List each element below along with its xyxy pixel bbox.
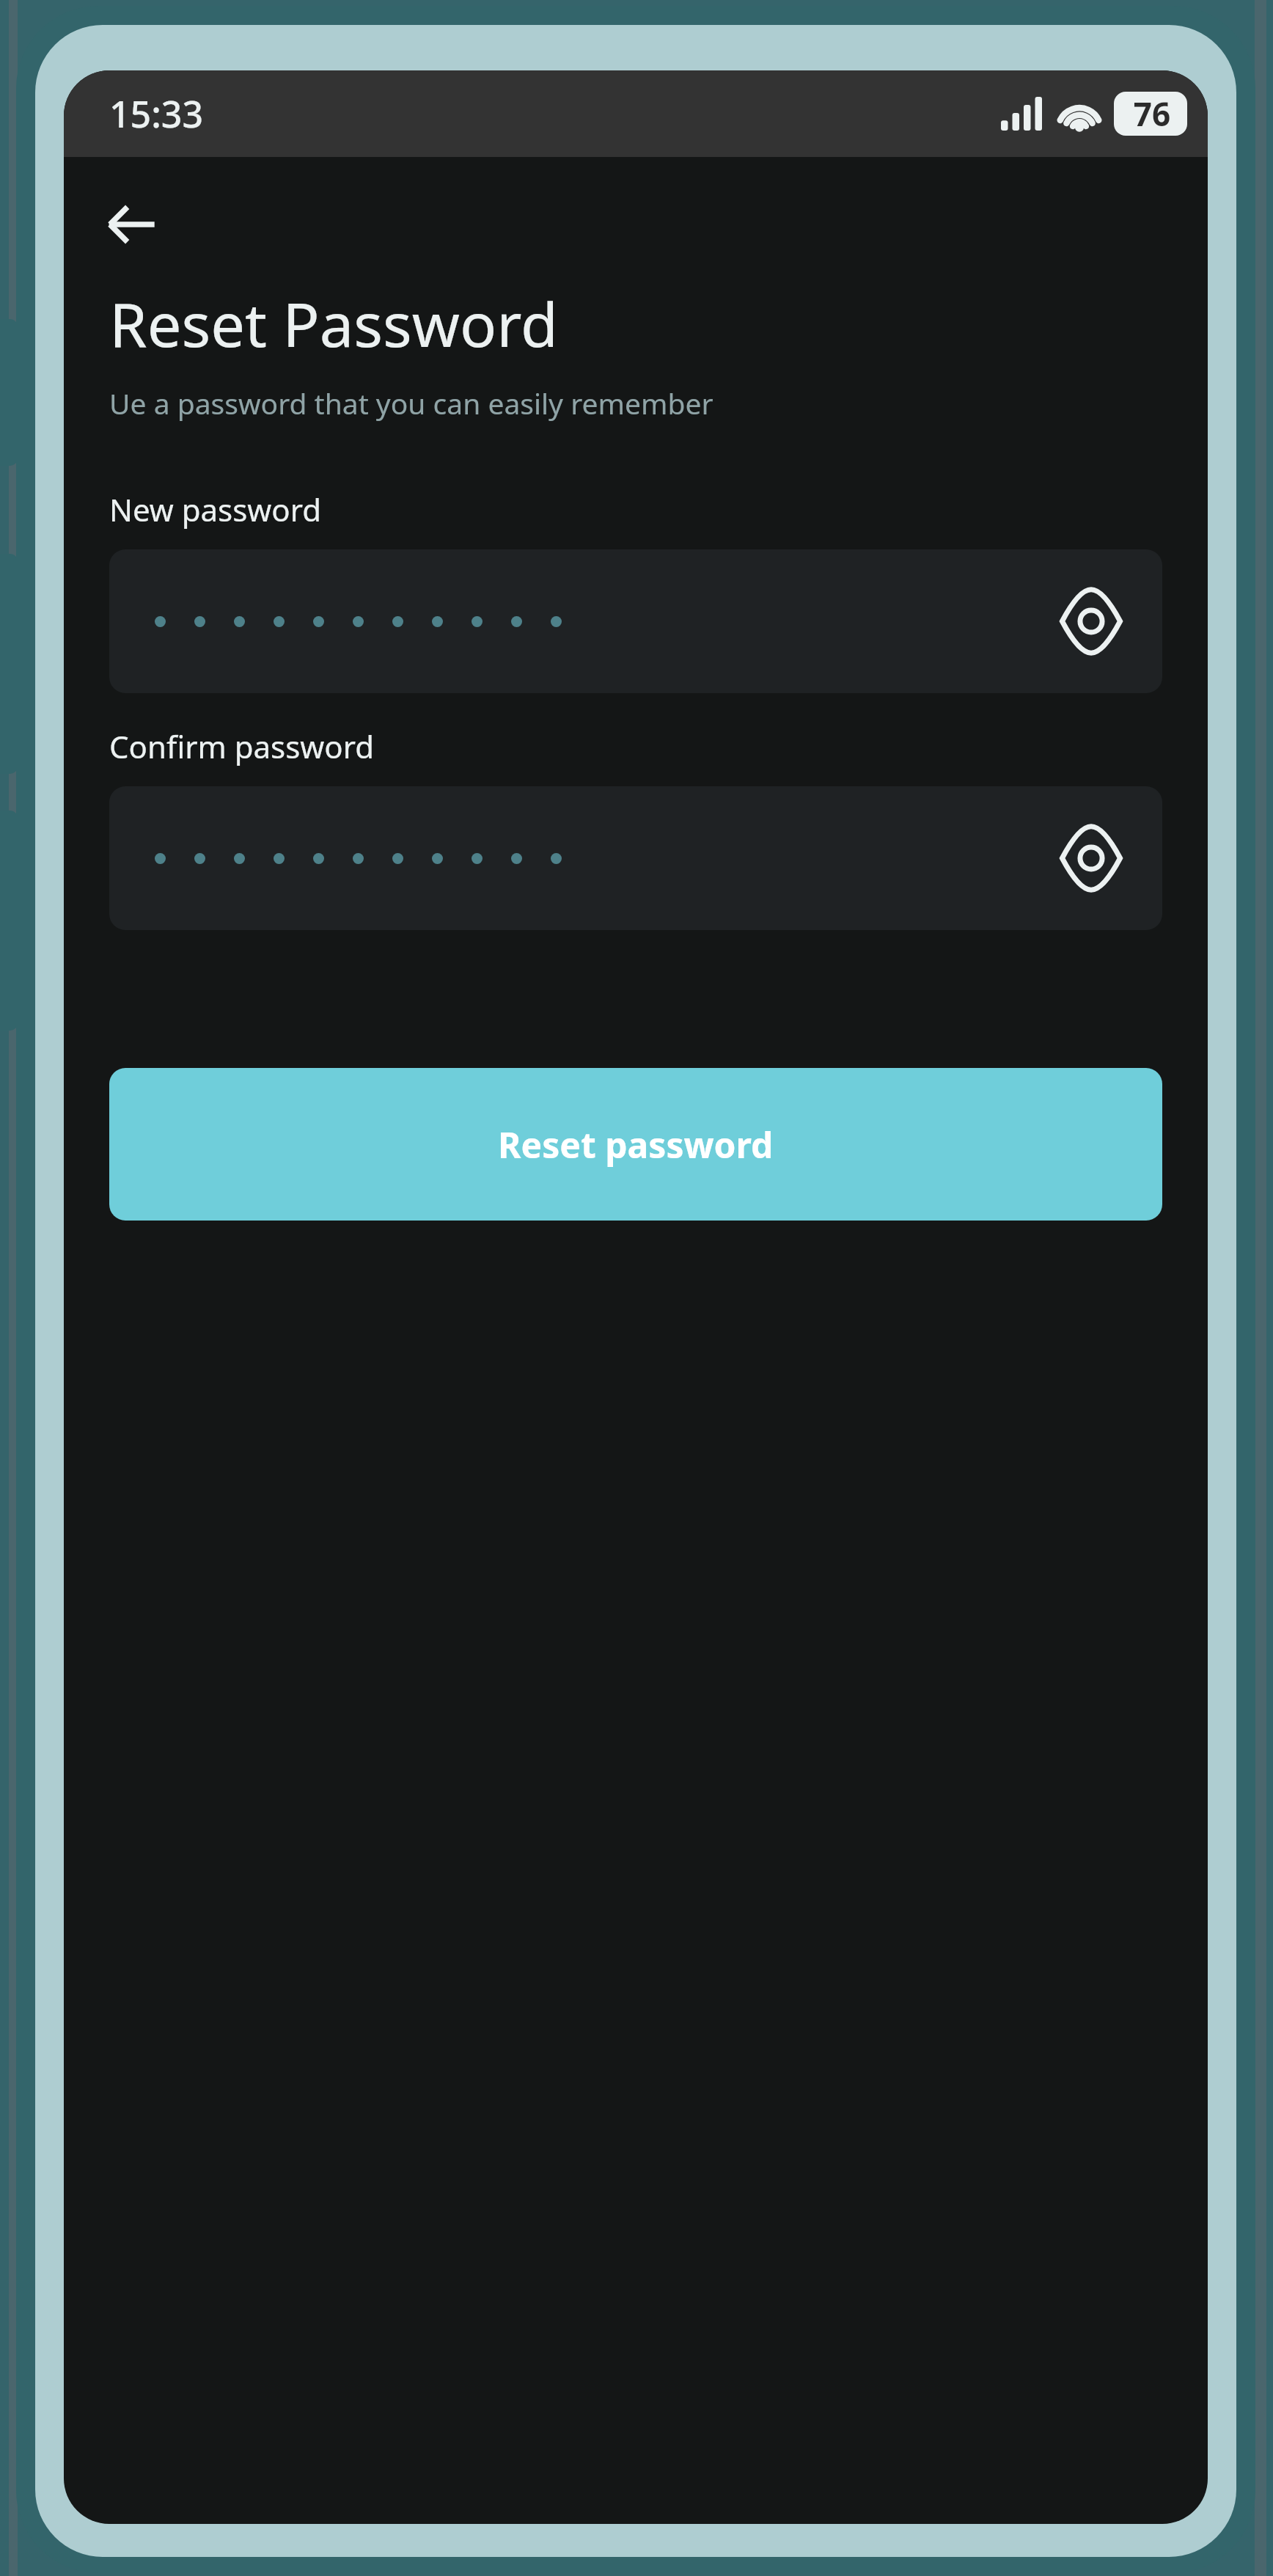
button[interactable]: Back [90,183,172,266]
staticText: Reset Password [109,282,558,365]
staticText: 15:33 [109,89,203,139]
button[interactable]: Reset password [109,1068,1162,1221]
staticText: Confirm password [109,725,375,767]
staticText: Ue a password that you can easily rememb… [109,384,713,422]
button[interactable]: Show password [109,786,1162,930]
staticText: Reset password [498,1121,774,1168]
button[interactable]: Show password [1051,818,1131,899]
staticText: 76 [1117,92,1187,136]
staticText: New password [109,489,322,530]
button[interactable]: Show password [109,549,1162,693]
button[interactable]: Show password [1051,581,1131,662]
